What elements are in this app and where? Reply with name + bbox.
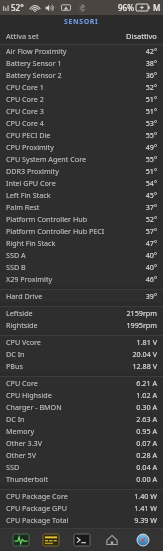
staticText: CPU Highside <box>6 390 52 400</box>
staticText: PBus <box>6 361 23 371</box>
button[interactable]: DC In <box>0 413 163 425</box>
staticText: 46° <box>145 274 157 284</box>
button[interactable]: Battery Sensor 2 <box>0 69 163 81</box>
staticText: 0.28 A <box>136 450 157 460</box>
staticText: 55° <box>145 130 157 140</box>
button[interactable]: Other 3.3V <box>0 437 163 449</box>
button[interactable]: Settings <box>133 532 153 548</box>
button[interactable]: CPU Core <box>0 377 163 389</box>
staticText: Air Flow Proximity <box>6 46 67 56</box>
button[interactable]: Other 5V <box>0 449 163 461</box>
staticText: 49° <box>145 142 157 152</box>
staticText: 52° <box>145 82 157 92</box>
staticText: Leftside <box>6 308 33 318</box>
button[interactable]: Memory <box>0 425 163 437</box>
staticText: CPU Package Core <box>6 491 68 501</box>
button[interactable]: Volume <box>44 2 56 14</box>
button[interactable]: CPU Core 4 <box>0 117 163 129</box>
button[interactable]: Terminal <box>72 532 92 548</box>
staticText: X29 Proximity <box>6 274 53 284</box>
button[interactable]: Palm Rest <box>0 201 163 213</box>
staticText: CPU Core 3 <box>6 106 44 116</box>
button[interactable]: Rightside <box>0 319 163 331</box>
staticText: CPU Core 1 <box>6 82 44 92</box>
button[interactable]: CPU Core 1 <box>0 81 163 93</box>
staticText: Attiva set <box>6 31 39 41</box>
button[interactable]: CPU Package Total <box>0 514 163 526</box>
staticText: 20.04 V <box>132 349 157 359</box>
button[interactable]: CPU System Agent Core <box>0 153 163 165</box>
button[interactable]: CPU Highside <box>0 389 163 401</box>
staticText: CPU Core 2 <box>6 94 44 104</box>
staticText: Battery Sensor 2 <box>6 70 62 80</box>
button[interactable]: CPU PECI Die <box>0 129 163 141</box>
staticText: DC In <box>6 349 25 359</box>
staticText: Memory <box>6 426 35 436</box>
staticText: 52° <box>11 2 24 13</box>
button[interactable]: CPU Vcore <box>0 336 163 348</box>
staticText: DDR3 Proximity <box>6 166 59 176</box>
staticText: CPU Package GPU <box>6 503 67 513</box>
staticText: 54° <box>145 178 157 188</box>
button[interactable]: Leftside <box>0 307 163 319</box>
staticText: SSD B <box>6 262 26 272</box>
button[interactable]: Battery Sensor 1 <box>0 57 163 69</box>
staticText: 1995rpm <box>126 320 157 330</box>
button[interactable]: Attiva set <box>0 28 163 44</box>
staticText: 38° <box>145 58 157 68</box>
button[interactable]: CPU Core 3 <box>0 105 163 117</box>
button[interactable]: CPU Proximity <box>0 141 163 153</box>
button[interactable]: Platform Controller Hub PECI <box>0 225 163 237</box>
staticText: 52° <box>145 214 157 224</box>
button[interactable]: PBus <box>0 360 163 372</box>
button[interactable]: Bluetooth <box>77 3 87 13</box>
button[interactable]: SSD B <box>0 261 163 273</box>
button[interactable]: X29 Proximity <box>0 273 163 285</box>
button[interactable]: Charger - BMON <box>0 401 163 413</box>
staticText: Thunderbolt <box>6 474 48 484</box>
button[interactable]: Battery charging <box>136 3 150 12</box>
staticText: 40° <box>145 262 157 272</box>
staticText: 0.95 A <box>136 426 157 436</box>
button[interactable]: Hard Drive <box>0 290 163 302</box>
staticText: 96% <box>118 2 134 13</box>
staticText: CPU Package Total <box>6 515 69 525</box>
staticText: Charger - BMON <box>6 402 62 412</box>
button[interactable]: Air Flow Proximity <box>0 45 163 57</box>
button[interactable]: Thunderbolt <box>0 473 163 485</box>
button[interactable]: CPU monitor <box>11 532 31 548</box>
staticText: 2.63 A <box>136 414 157 424</box>
staticText: 51° <box>145 94 157 104</box>
staticText: 42° <box>145 46 157 56</box>
staticText: Palm Rest <box>6 202 40 212</box>
staticText: 12.88 V <box>132 361 157 371</box>
staticText: Right Fin Stack <box>6 238 56 248</box>
staticText: CPU PECI Die <box>6 130 51 140</box>
button[interactable]: DDR3 Proximity <box>0 165 163 177</box>
staticText: 40° <box>145 250 157 260</box>
button[interactable]: Right Fin Stack <box>0 237 163 249</box>
button[interactable]: DC In <box>0 348 163 360</box>
button[interactable]: SSD A <box>0 249 163 261</box>
staticText: 1.40 W <box>134 491 157 501</box>
button[interactable]: AirPlay display <box>60 2 72 14</box>
button[interactable]: Sensors menu <box>2 4 10 12</box>
button[interactable]: Intel GPU Core <box>0 177 163 189</box>
button[interactable]: CPU Package GPU <box>0 502 163 514</box>
staticText: 1.02 A <box>136 390 157 400</box>
staticText: Other 5V <box>6 450 36 460</box>
button[interactable]: Memory monitor <box>41 532 61 548</box>
button[interactable]: Platform Controller Hub <box>0 213 163 225</box>
staticText: SENSORI <box>64 17 99 27</box>
staticText: 9.39 W <box>134 515 157 525</box>
button[interactable]: Wi-Fi <box>29 2 40 13</box>
button[interactable]: CPU Package Core <box>0 490 163 502</box>
staticText: 1.41 W <box>134 503 157 513</box>
staticText: Battery Sensor 1 <box>6 58 62 68</box>
button[interactable]: Left Fin Stack <box>0 189 163 201</box>
button[interactable]: Home <box>102 532 122 548</box>
button[interactable]: CPU Core 2 <box>0 93 163 105</box>
button[interactable]: SSD <box>0 461 163 473</box>
